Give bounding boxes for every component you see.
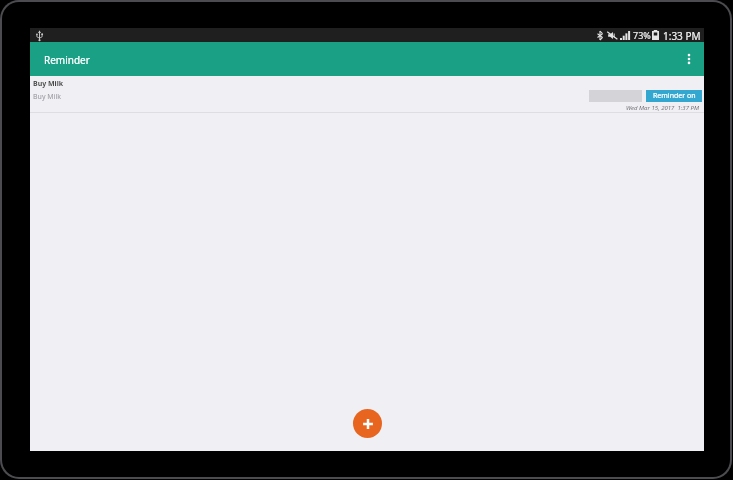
staticText: 1:33 PM (663, 29, 701, 43)
staticText: Buy Milk (33, 92, 61, 102)
button[interactable]: Buy Milk (30, 76, 704, 113)
staticText: Reminder (44, 53, 90, 67)
staticText: 73% (633, 29, 651, 41)
staticText: Wed Mar 15, 2017 1:37 PM (626, 104, 699, 112)
button[interactable]: Reminder toggle (589, 90, 703, 102)
button[interactable]: Add reminder (353, 409, 382, 438)
staticText: Buy Milk (33, 79, 64, 89)
staticText: Reminder on (653, 91, 696, 101)
button[interactable]: More options (670, 42, 704, 76)
